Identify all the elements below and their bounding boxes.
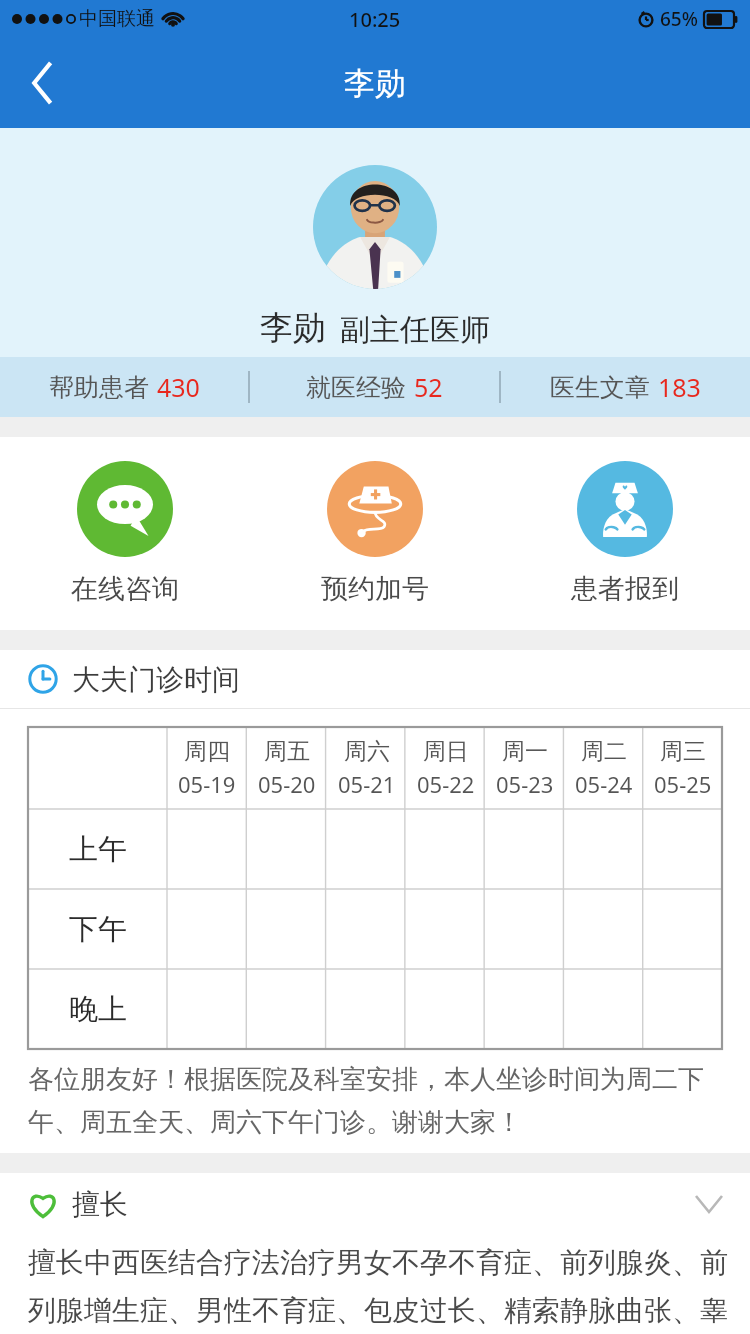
staticText: 周六: [344, 737, 390, 766]
staticText: 10:25: [349, 6, 401, 33]
staticText: 副主任医师: [340, 311, 490, 349]
button[interactable]: [327, 969, 406, 1049]
staticText: 周二: [581, 737, 627, 766]
staticText: 各位朋友好！根据医院及科室安排，本人坐诊时间为周二下午、周五全天、周六下午门诊。…: [28, 1063, 728, 1139]
button[interactable]: [643, 889, 722, 969]
staticText: 医生文章: [550, 372, 650, 403]
staticText: 擅长: [72, 1187, 128, 1222]
staticText: 52: [414, 370, 443, 404]
button[interactable]: [247, 889, 327, 969]
button[interactable]: [485, 969, 564, 1049]
button[interactable]: [327, 809, 406, 889]
staticText: 预约加号: [321, 572, 429, 606]
staticText: 05-24: [575, 769, 633, 799]
button[interactable]: [327, 889, 406, 969]
button[interactable]: 帮助患者: [0, 357, 248, 417]
button[interactable]: [485, 889, 564, 969]
button[interactable]: 在线咨询: [0, 437, 250, 630]
button[interactable]: [167, 889, 247, 969]
staticText: 05-23: [496, 769, 554, 799]
button[interactable]: [564, 809, 643, 889]
button[interactable]: [406, 889, 485, 969]
staticText: 下午: [69, 911, 127, 948]
staticText: 李勋: [344, 64, 406, 103]
staticText: 上午: [69, 831, 127, 868]
staticText: 430: [157, 370, 200, 404]
button[interactable]: [406, 809, 485, 889]
staticText: 在线咨询: [71, 572, 179, 606]
staticText: 帮助患者: [49, 372, 149, 403]
button[interactable]: 医生文章: [501, 357, 750, 417]
button[interactable]: 患者报到: [500, 437, 750, 630]
staticText: 05-21: [338, 769, 396, 799]
staticText: 患者报到: [571, 572, 679, 606]
staticText: 05-19: [178, 769, 236, 799]
staticText: 中国联通: [79, 7, 155, 31]
button[interactable]: [247, 969, 327, 1049]
button[interactable]: [564, 969, 643, 1049]
button[interactable]: [313, 165, 437, 289]
button[interactable]: [643, 809, 722, 889]
button[interactable]: [247, 809, 327, 889]
button[interactable]: [485, 809, 564, 889]
button[interactable]: 大夫门诊时间: [0, 650, 750, 708]
staticText: 65%: [660, 6, 698, 32]
button[interactable]: [643, 969, 722, 1049]
staticText: 05-20: [258, 769, 316, 799]
staticText: 周一: [502, 737, 548, 766]
button[interactable]: 就医经验: [250, 357, 499, 417]
button[interactable]: 预约加号: [250, 437, 500, 630]
button[interactable]: [167, 809, 247, 889]
staticText: 周五: [264, 737, 310, 766]
staticText: 183: [658, 370, 701, 404]
staticText: 李勋: [260, 307, 326, 349]
staticText: 大夫门诊时间: [72, 662, 240, 697]
staticText: 晚上: [69, 991, 127, 1028]
button[interactable]: [564, 889, 643, 969]
button[interactable]: [406, 969, 485, 1049]
staticText: 05-25: [654, 769, 712, 799]
staticText: 周三: [660, 737, 706, 766]
staticText: 周日: [423, 737, 469, 766]
button[interactable]: 擅长: [0, 1173, 750, 1235]
staticText: 周四: [184, 737, 230, 766]
button[interactable]: [167, 969, 247, 1049]
staticText: 就医经验: [306, 372, 406, 403]
button[interactable]: Back: [0, 38, 84, 128]
staticText: 擅长中西医结合疗法治疗男女不孕不育症、前列腺炎、前列腺增生症、男性不育症、包皮过…: [28, 1245, 728, 1334]
staticText: 05-22: [417, 769, 475, 799]
